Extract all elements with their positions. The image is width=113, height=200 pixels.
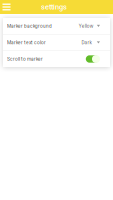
button[interactable]: Scroll to marker xyxy=(86,55,100,63)
staticText: Marker text color xyxy=(7,40,46,45)
staticText: Yellow xyxy=(79,23,94,29)
staticText: Marker background xyxy=(7,23,52,29)
staticText: Dark xyxy=(81,40,91,45)
button[interactable]: Menu xyxy=(0,0,13,14)
button[interactable]: Dark xyxy=(76,37,100,48)
button[interactable]: Yellow xyxy=(76,20,100,31)
staticText: Scroll to marker xyxy=(7,56,43,62)
staticText: settings xyxy=(41,3,67,11)
